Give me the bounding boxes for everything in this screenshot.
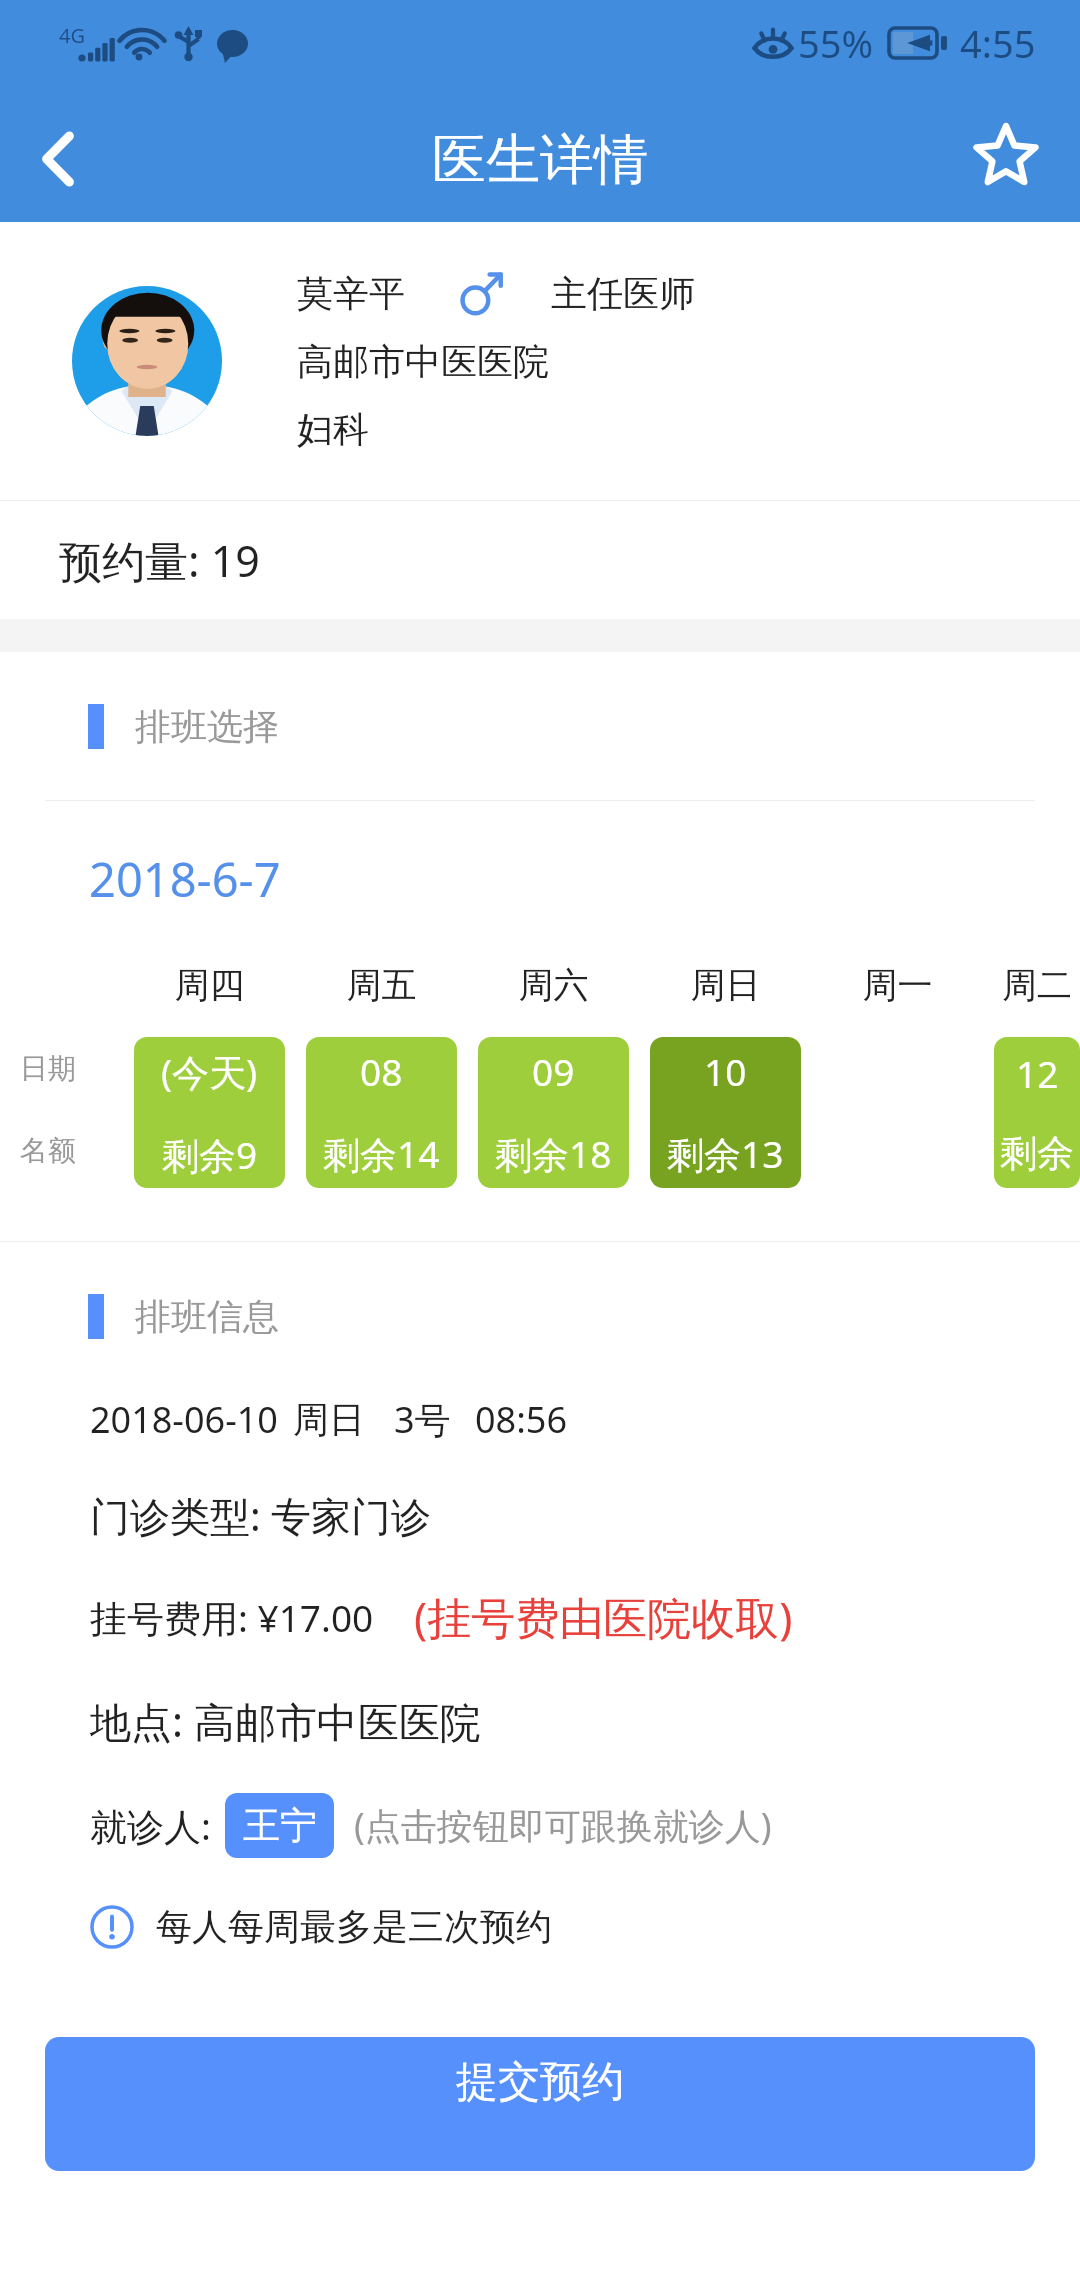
button[interactable]: Favorite [948, 96, 1064, 212]
staticText: (挂号费由医院收取) [414, 1587, 793, 1647]
button[interactable]: Back [0, 101, 116, 217]
staticText: 预约量: 19 [59, 531, 260, 590]
staticText: 周六 [478, 963, 629, 1007]
staticText: 排班信息 [135, 1294, 279, 1339]
staticText: 日期 [20, 1051, 76, 1086]
staticText: 4G [59, 22, 85, 49]
staticText: 周五 [306, 963, 457, 1007]
staticText: 09 [532, 1046, 575, 1096]
staticText: 周四 [134, 963, 285, 1007]
staticText: 医生详情 [432, 126, 648, 194]
staticText: 2018-06-10 [90, 1395, 278, 1444]
button[interactable]: 12 [994, 1037, 1080, 1188]
button[interactable]: 09 [478, 1037, 629, 1188]
staticText: 3号 [394, 1395, 451, 1444]
staticText: 排班选择 [135, 704, 279, 749]
staticText: 55% [798, 17, 874, 69]
staticText: 就诊人: [90, 1800, 211, 1851]
staticText: 周日 [650, 963, 801, 1007]
staticText: 名额 [20, 1133, 76, 1168]
staticText: 妇科 [297, 407, 369, 452]
staticText: 10 [704, 1046, 747, 1096]
staticText: 地点: 高邮市中医医院 [90, 1693, 481, 1749]
staticText: 08:56 [475, 1395, 568, 1444]
staticText: 莫辛平 [297, 271, 405, 316]
staticText: 门诊类型: 专家门诊 [90, 1488, 432, 1543]
staticText: 每人每周最多是三次预约 [156, 1904, 552, 1949]
staticText: 主任医师 [551, 271, 695, 316]
staticText: 12 [1016, 1048, 1059, 1098]
staticText: (点击按钮即可跟换就诊人) [354, 1801, 772, 1850]
staticText: 剩余14 [323, 1128, 440, 1179]
button[interactable]: 08 [306, 1037, 457, 1188]
staticText: 王宁 [243, 1802, 317, 1849]
staticText: 提交预约 [456, 2056, 624, 2109]
staticText: 高邮市中医医院 [297, 339, 549, 384]
staticText: 剩余9 [162, 1129, 258, 1180]
staticText: 4:55 [960, 17, 1036, 69]
staticText: 挂号费用: ¥17.00 [90, 1592, 374, 1643]
button[interactable]: 10 [650, 1037, 801, 1188]
staticText: 08 [360, 1046, 403, 1096]
staticText: 2018-6-7 [89, 847, 281, 911]
staticText: 剩余18 [495, 1128, 612, 1179]
button[interactable]: (今天) [134, 1037, 285, 1188]
staticText: (今天) [161, 1046, 258, 1097]
staticText: 周二 [994, 963, 1080, 1007]
staticText: 周日 [293, 1397, 365, 1442]
staticText: 周一 [822, 963, 973, 1007]
button[interactable]: 提交预约 [45, 2037, 1035, 2171]
staticText: 剩余 [1000, 1130, 1074, 1177]
staticText: 剩余13 [667, 1128, 784, 1179]
button[interactable]: 王宁 [225, 1793, 334, 1858]
